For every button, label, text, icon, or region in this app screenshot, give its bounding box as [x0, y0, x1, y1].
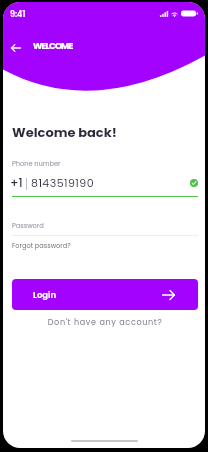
button[interactable]: Don't have any account? [12, 316, 198, 327]
staticText: 8143519190 [31, 175, 95, 190]
staticText: 9:41 [10, 9, 26, 20]
button[interactable]: Login [12, 279, 198, 310]
staticText: Login [33, 289, 57, 301]
staticText: +1 [10, 174, 23, 191]
staticText: Welcome back! [12, 123, 117, 141]
button[interactable]: Forgot password? [12, 241, 71, 250]
button[interactable]: Back [7, 39, 25, 57]
staticText: WELCOME [33, 40, 73, 53]
staticText: Password [12, 221, 44, 230]
staticText: Phone number [12, 159, 61, 168]
